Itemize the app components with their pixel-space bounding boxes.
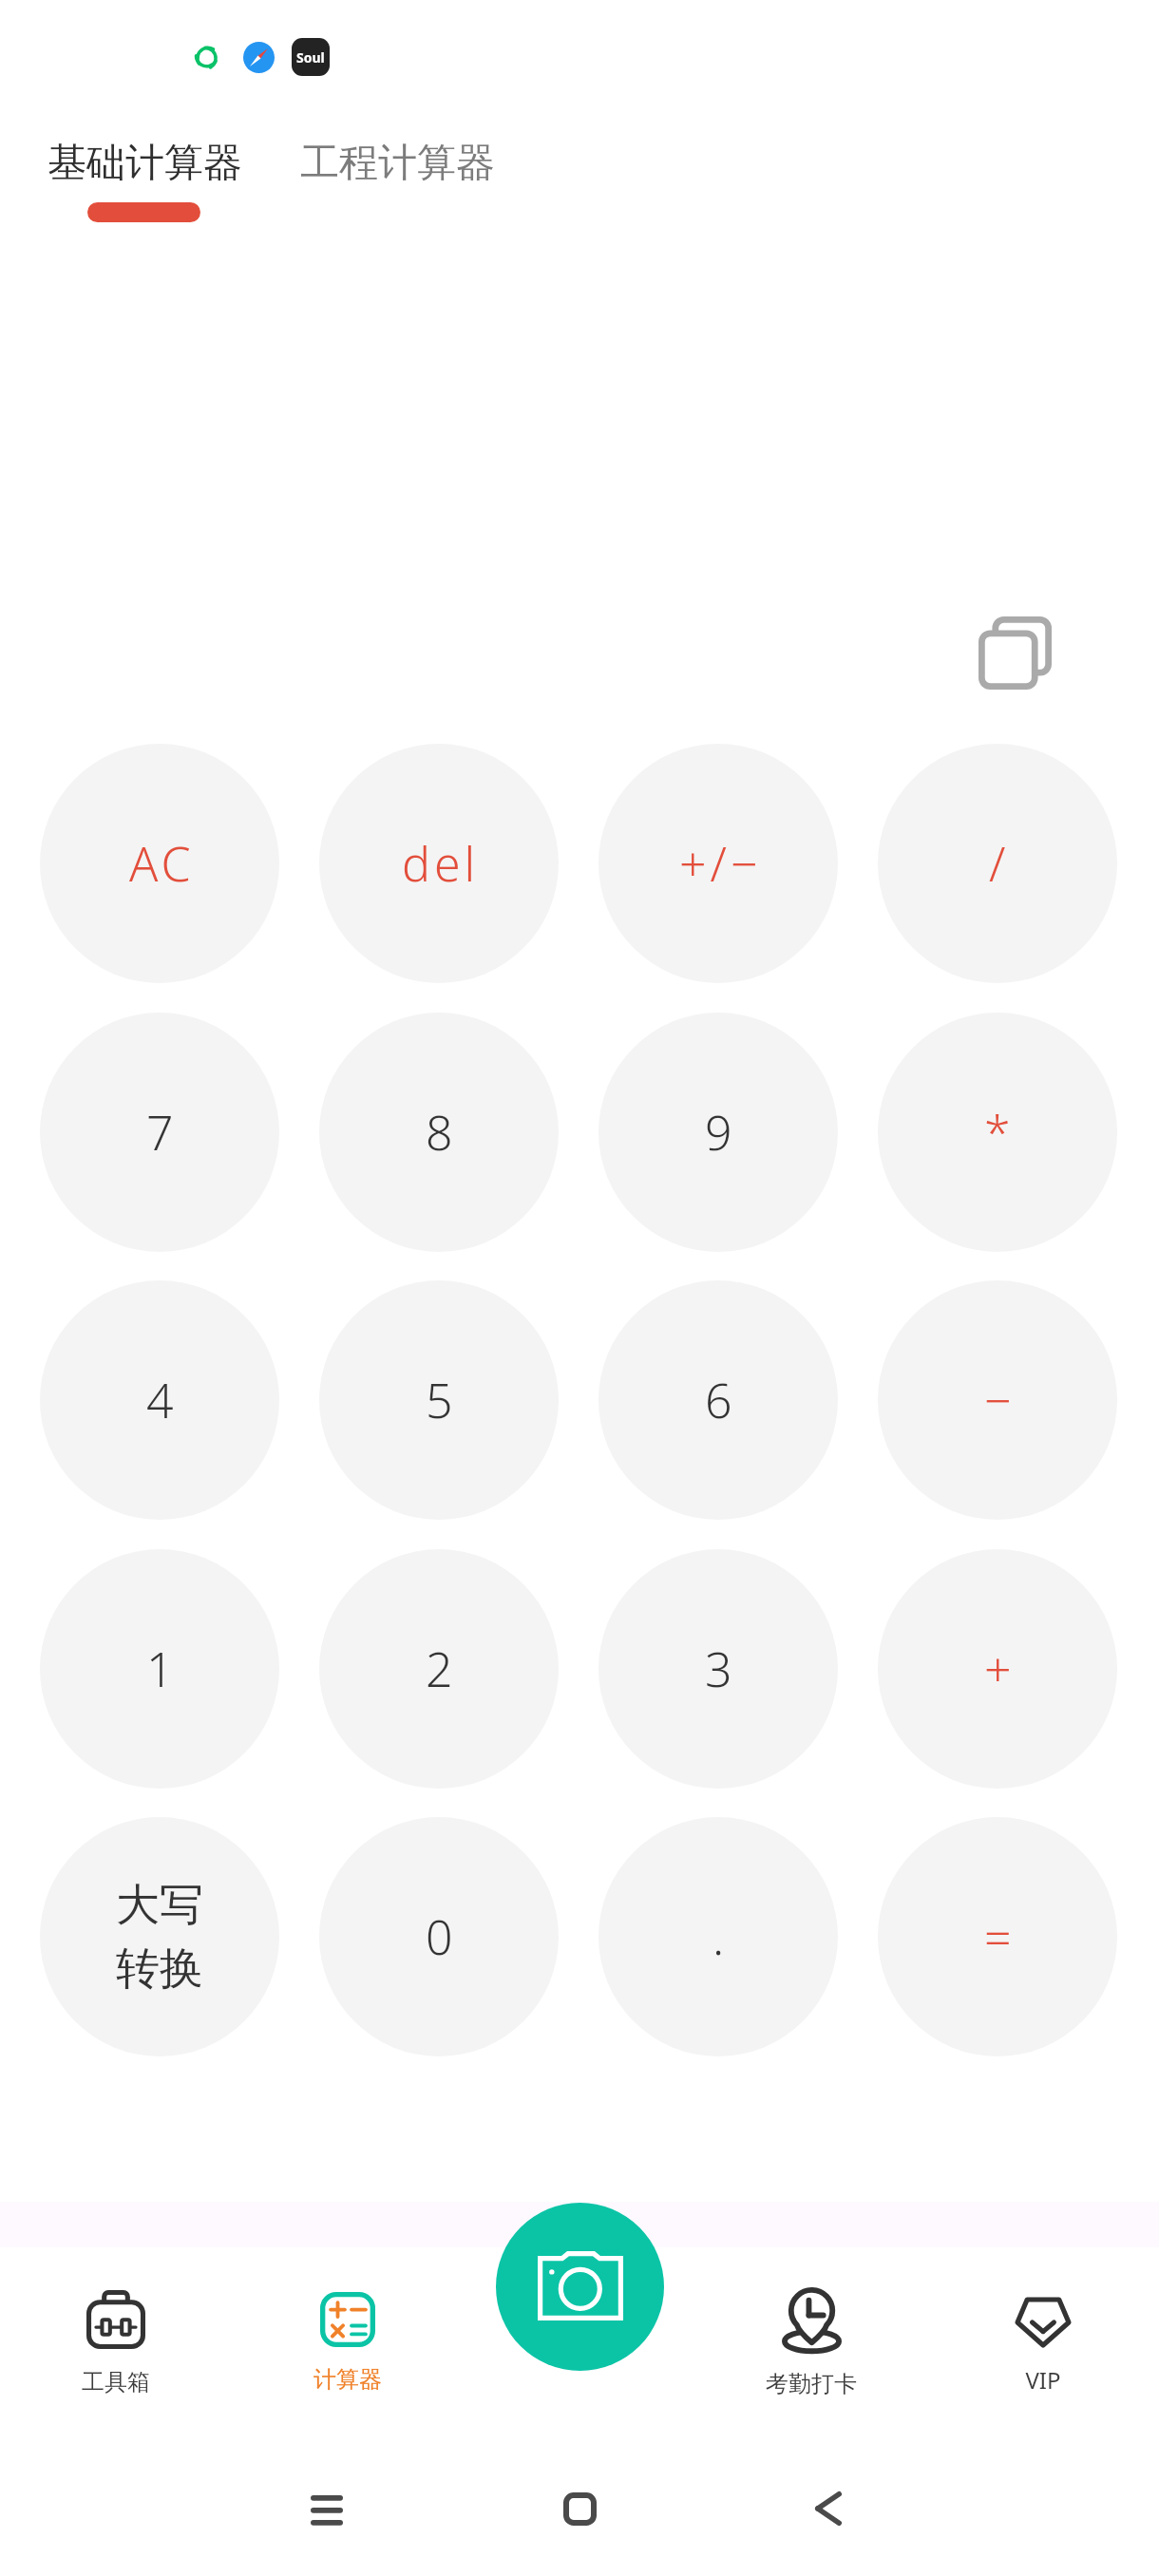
staticText: VIP bbox=[1025, 2364, 1061, 2396]
button[interactable]: 5 bbox=[319, 1280, 559, 1520]
button[interactable]: del bbox=[319, 744, 559, 983]
button[interactable]: + bbox=[878, 1549, 1117, 1789]
button[interactable]: AC bbox=[40, 744, 279, 983]
staticText: * bbox=[984, 1100, 1015, 1165]
staticText: Soul bbox=[296, 48, 325, 66]
staticText: 工程计算器 bbox=[300, 139, 495, 188]
staticText: 1 bbox=[146, 1637, 178, 1701]
staticText: = bbox=[984, 1904, 1016, 1969]
button[interactable]: − bbox=[878, 1280, 1117, 1520]
button[interactable]: = bbox=[878, 1817, 1117, 2056]
staticText: 工具箱 bbox=[82, 2368, 150, 2396]
staticText: . bbox=[712, 1904, 729, 1969]
button[interactable]: +/− bbox=[598, 744, 838, 983]
staticText: 4 bbox=[146, 1368, 178, 1432]
button[interactable]: Home bbox=[534, 2463, 625, 2554]
button[interactable]: 4 bbox=[40, 1280, 279, 1520]
button[interactable]: 计算器 bbox=[243, 2255, 452, 2407]
button[interactable]: 3 bbox=[598, 1549, 838, 1789]
button[interactable]: 6 bbox=[598, 1280, 838, 1520]
staticText: 大写 bbox=[116, 1878, 203, 1933]
staticText: 8 bbox=[426, 1100, 457, 1165]
button[interactable]: Copy result bbox=[957, 595, 1073, 710]
button[interactable]: 2 bbox=[319, 1549, 559, 1789]
button[interactable]: 大写 bbox=[40, 1817, 279, 2056]
button[interactable]: 7 bbox=[40, 1013, 279, 1252]
staticText: 7 bbox=[146, 1100, 178, 1165]
staticText: 0 bbox=[426, 1904, 457, 1969]
button[interactable]: 考勤打卡 bbox=[707, 2255, 916, 2407]
button[interactable]: 工具箱 bbox=[11, 2255, 220, 2407]
staticText: 6 bbox=[705, 1368, 736, 1432]
button[interactable]: 8 bbox=[319, 1013, 559, 1252]
staticText: / bbox=[989, 831, 1010, 896]
staticText: 9 bbox=[705, 1100, 736, 1165]
button[interactable]: . bbox=[598, 1817, 838, 2056]
staticText: − bbox=[984, 1368, 1016, 1432]
button[interactable]: 0 bbox=[319, 1817, 559, 2056]
staticText: 转换 bbox=[116, 1941, 203, 1997]
staticText: del bbox=[402, 831, 480, 896]
staticText: 基础计算器 bbox=[47, 139, 242, 188]
staticText: AC bbox=[129, 831, 195, 896]
button[interactable]: Camera bbox=[496, 2203, 664, 2371]
staticText: 3 bbox=[705, 1637, 736, 1701]
button[interactable]: VIP bbox=[939, 2255, 1148, 2407]
button[interactable]: Recent apps bbox=[281, 2463, 372, 2554]
button[interactable]: 工程计算器 bbox=[272, 112, 521, 226]
button[interactable]: 基础计算器 bbox=[19, 112, 268, 226]
button[interactable]: * bbox=[878, 1013, 1117, 1252]
button[interactable]: Back bbox=[787, 2463, 878, 2554]
button[interactable]: 1 bbox=[40, 1549, 279, 1789]
staticText: + bbox=[984, 1637, 1016, 1701]
button[interactable]: / bbox=[878, 744, 1117, 983]
staticText: 5 bbox=[426, 1368, 457, 1432]
button[interactable]: 9 bbox=[598, 1013, 838, 1252]
staticText: +/− bbox=[679, 831, 762, 896]
staticText: 考勤打卡 bbox=[766, 2370, 857, 2398]
staticText: 2 bbox=[426, 1637, 457, 1701]
staticText: 计算器 bbox=[313, 2365, 382, 2394]
